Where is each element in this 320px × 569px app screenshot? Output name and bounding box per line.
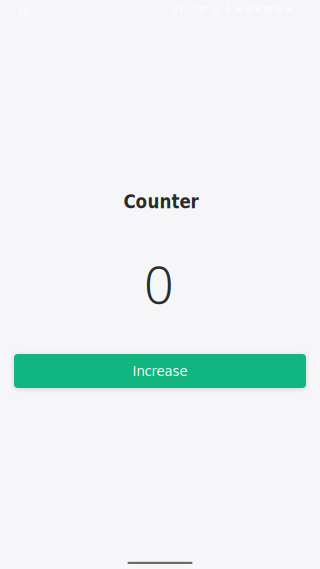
staticText: Counter <box>123 191 198 213</box>
button[interactable]: Increase <box>14 354 306 388</box>
staticText: Increase <box>132 362 187 380</box>
staticText: 0 <box>144 248 174 319</box>
